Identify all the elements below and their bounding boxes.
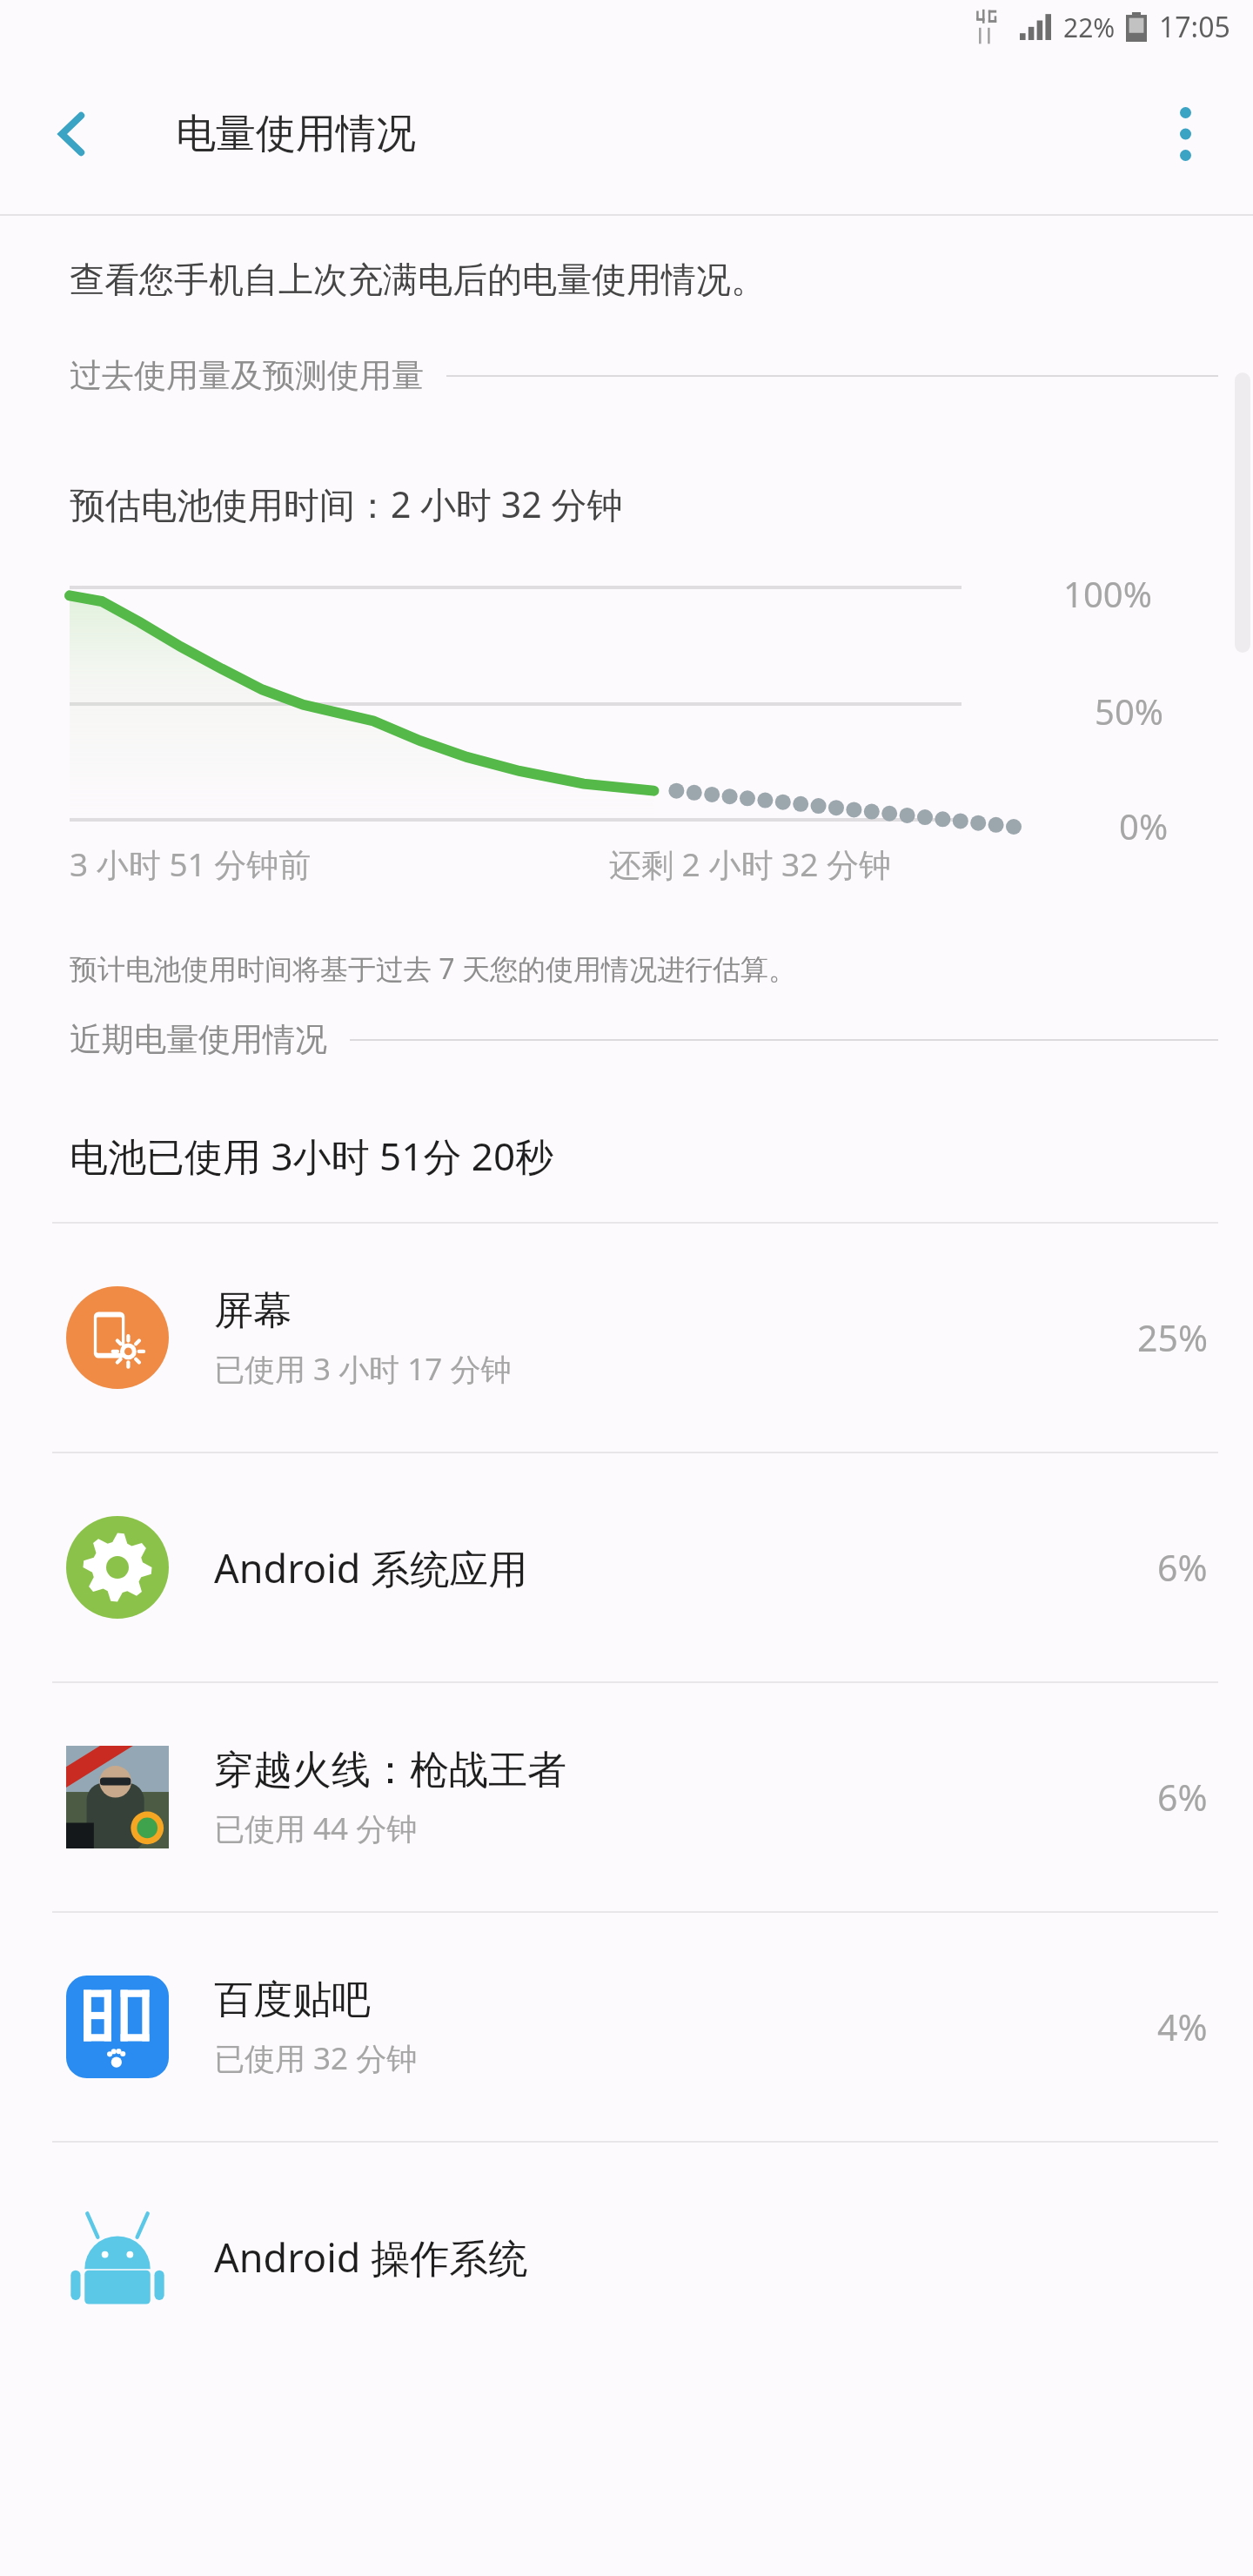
button[interactable]: Android 操作系统 [0,2143,1253,2371]
staticText: 6% [1157,1773,1208,1821]
staticText: 100% [1063,570,1152,617]
staticText: 已使用 3 小时 17 分钟 [214,1348,512,1390]
staticText: 6% [1157,1543,1208,1592]
staticText: 17:05 [1159,8,1230,46]
staticText: 过去使用量及预测使用量 [70,355,424,396]
staticText: 电池已使用 3小时 51分 20秒 [70,1130,554,1182]
staticText: 4% [1157,2002,1208,2051]
staticText: 预估电池使用时间：2 小时 32 分钟 [70,480,623,528]
staticText: Android 操作系统 [214,2231,528,2284]
button[interactable]: Android 系统应用 [0,1453,1253,1681]
button[interactable]: 屏幕 [0,1224,1253,1452]
staticText: 25% [1137,1313,1208,1362]
staticText: 还剩 2 小时 32 分钟 [609,842,891,886]
staticText: 3 小时 51 分钟前 [70,842,312,886]
staticText: 屏幕 [214,1286,292,1336]
staticText: 22% [1063,10,1116,45]
staticText: 0% [1119,802,1169,849]
button[interactable]: More options [1140,89,1230,179]
button[interactable]: Back [28,89,118,179]
staticText: 50% [1095,688,1163,735]
staticText: 已使用 32 分钟 [214,2037,418,2079]
staticText: 预计电池使用时间将基于过去 7 天您的使用情况进行估算。 [70,949,796,988]
button[interactable]: 百度贴吧 [0,1913,1253,2141]
staticText: 穿越火线：枪战王者 [214,1746,566,1795]
staticText: Android 系统应用 [214,1541,528,1594]
staticText: 百度贴吧 [214,1976,371,2025]
staticText: 电量使用情况 [176,109,416,159]
button[interactable]: 穿越火线：枪战王者 [0,1683,1253,1911]
staticText: 已使用 44 分钟 [214,1808,418,1849]
staticText: 查看您手机自上次充满电后的电量使用情况。 [70,258,766,301]
staticText: 近期电量使用情况 [70,1019,327,1060]
